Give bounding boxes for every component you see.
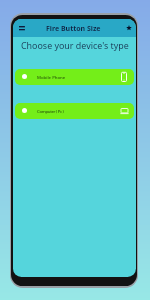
button[interactable]: Menu: [15, 22, 29, 34]
staticText: Fire Button Size: [46, 24, 101, 34]
staticText: Mobile Phone: [37, 74, 66, 80]
button[interactable]: Computer ( Pc ): [15, 103, 134, 119]
button[interactable]: Favourite: [123, 22, 135, 34]
staticText: Computer ( Pc ): [37, 108, 64, 114]
button[interactable]: Mobile Phone: [15, 69, 134, 85]
staticText: Choose your device's type: [21, 39, 129, 51]
